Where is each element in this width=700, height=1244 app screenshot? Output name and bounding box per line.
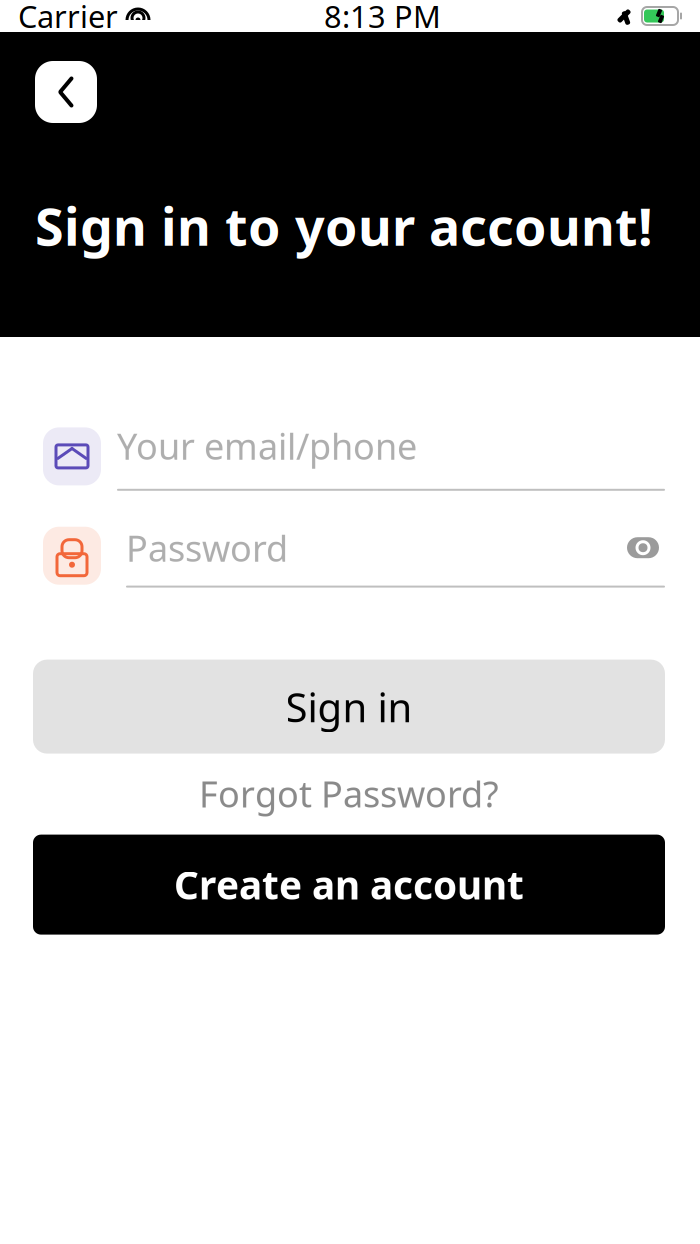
button[interactable]: Sign in [33, 660, 665, 754]
button[interactable]: Create an account [33, 835, 665, 935]
staticText: Your email/phone [117, 422, 417, 470]
staticText: 8:13 PM [324, 0, 441, 36]
button[interactable]: Forgot Password? [33, 771, 665, 817]
staticText: Create an account [174, 859, 524, 910]
button[interactable]: Back [35, 61, 97, 123]
button[interactable]: Show password [621, 531, 665, 565]
staticText: Carrier [18, 0, 118, 36]
staticText: Sign in [285, 680, 412, 733]
staticText: Forgot Password? [199, 770, 499, 817]
staticText: Sign in to your account! [35, 191, 653, 260]
staticText: Password [126, 524, 288, 572]
